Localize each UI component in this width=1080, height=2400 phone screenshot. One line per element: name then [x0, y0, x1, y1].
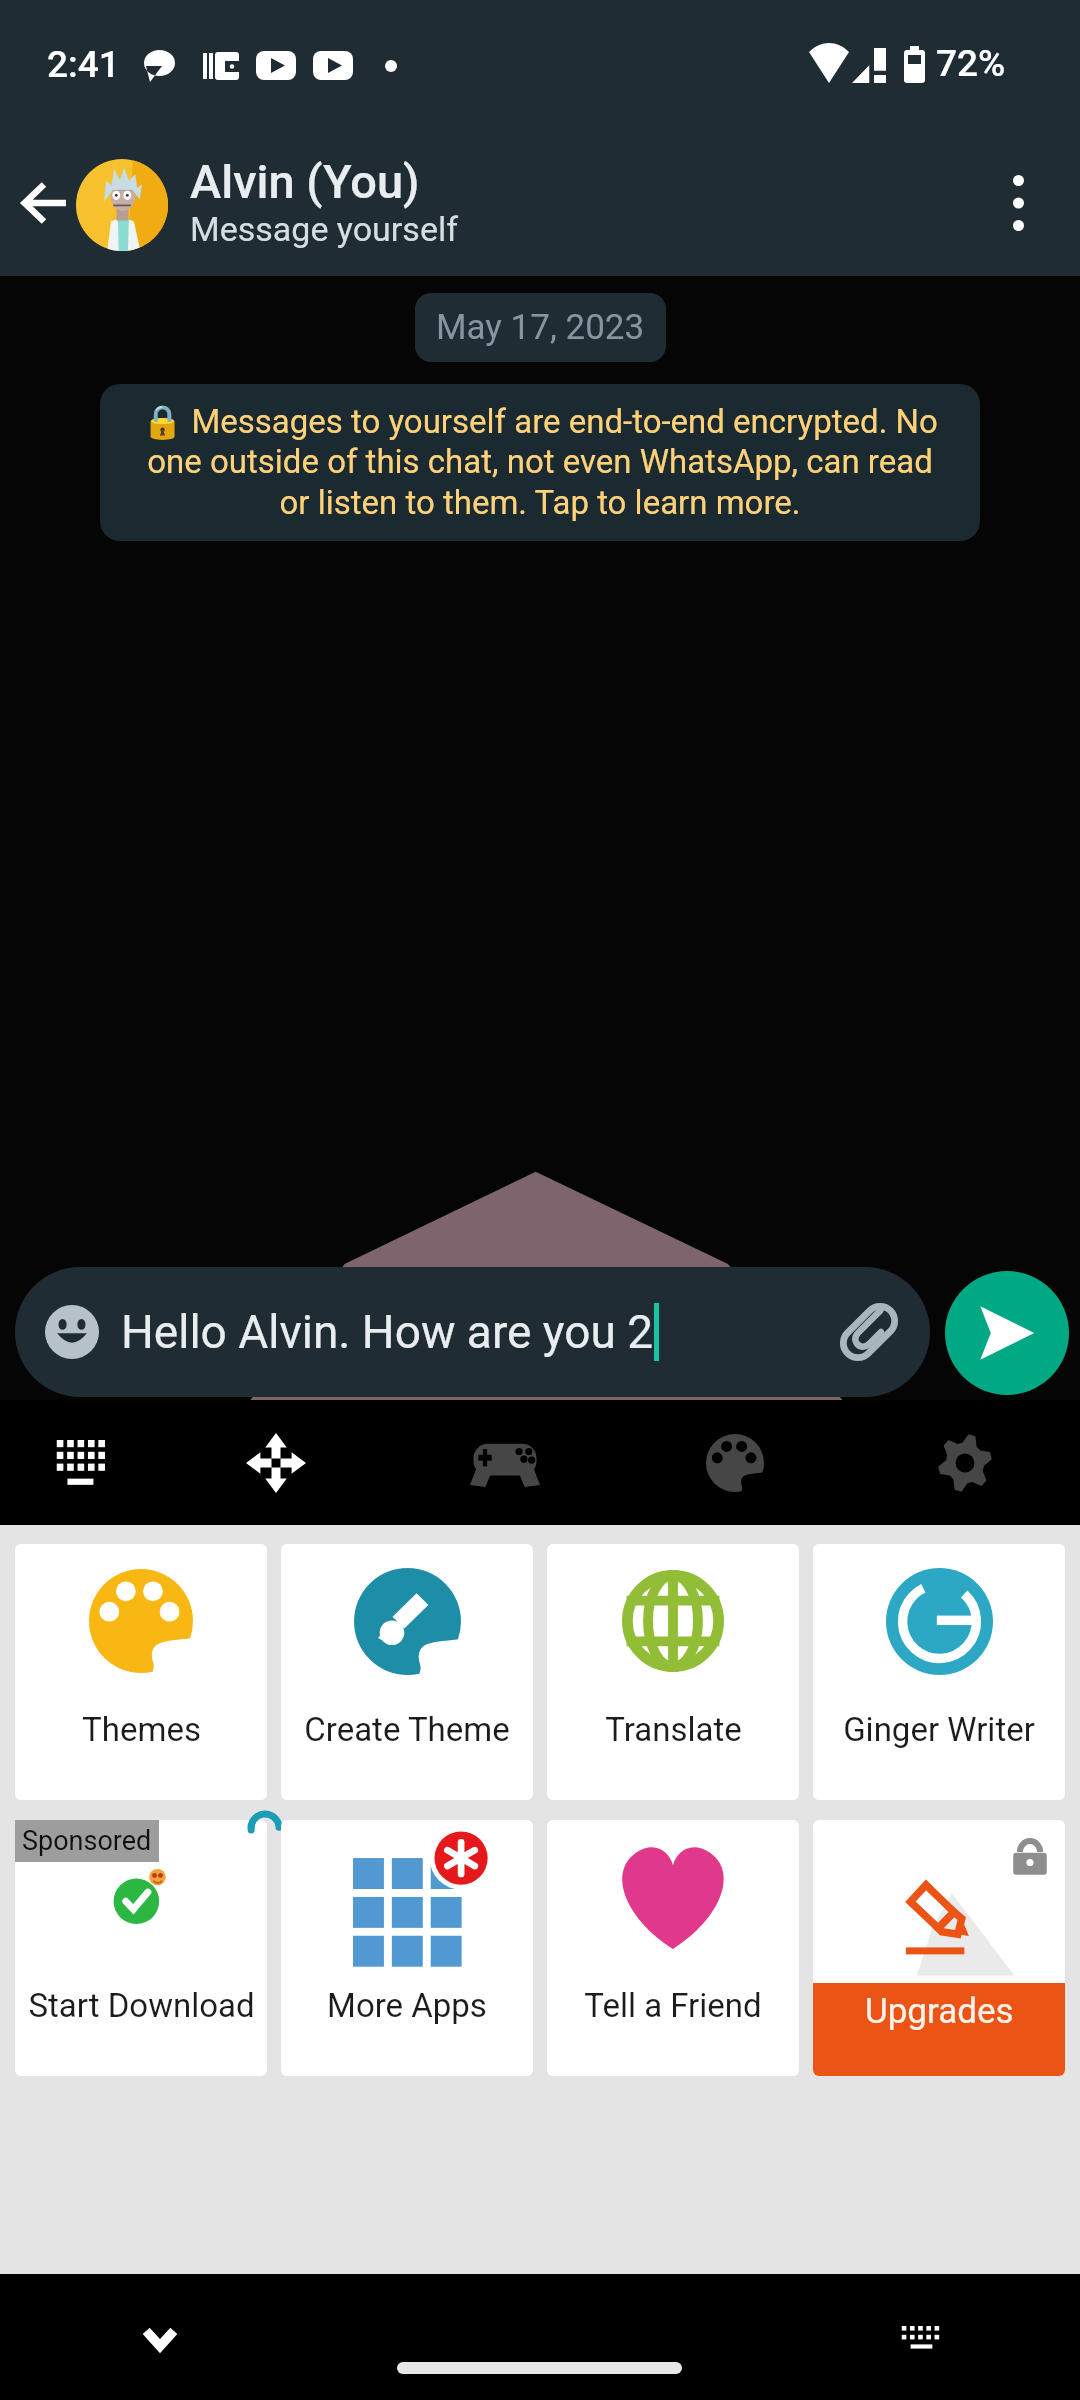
- staticText: Sponsored: [22, 1825, 152, 1857]
- button[interactable]: Start Download: [15, 1820, 267, 2076]
- button[interactable]: Hide keyboard: [110, 2288, 210, 2388]
- button[interactable]: Switch keyboard: [871, 2287, 971, 2387]
- button[interactable]: Themes: [680, 1404, 790, 1521]
- staticText: More Apps: [327, 1986, 487, 2025]
- staticText: 72%: [936, 42, 1006, 85]
- button[interactable]: Send: [945, 1271, 1069, 1395]
- staticText: Create Theme: [304, 1710, 510, 1749]
- button[interactable]: More Apps: [281, 1820, 533, 2076]
- button[interactable]: Back: [0, 155, 94, 251]
- staticText: 🔒 Messages to yourself are end-to-end en…: [130, 402, 950, 523]
- button[interactable]: Games: [450, 1404, 560, 1521]
- button[interactable]: Create Theme: [281, 1544, 533, 1800]
- staticText: Translate: [605, 1710, 742, 1749]
- button[interactable]: Themes: [15, 1544, 267, 1800]
- button[interactable]: Settings: [910, 1404, 1020, 1521]
- button[interactable]: Translate: [547, 1544, 799, 1800]
- staticText: 2:41: [47, 43, 120, 86]
- button[interactable]: More options: [968, 153, 1068, 253]
- button[interactable]: Hello Alvin. How are you 2: [15, 1267, 930, 1397]
- staticText: Themes: [82, 1710, 201, 1749]
- staticText: Start Download: [28, 1986, 255, 2025]
- button[interactable]: May 17, 2023: [415, 293, 666, 362]
- button[interactable]: Attach: [832, 1295, 906, 1369]
- button[interactable]: Keyboard: [27, 1404, 137, 1521]
- button[interactable]: Tell a Friend: [547, 1820, 799, 2076]
- staticText: Upgrades: [865, 1991, 1014, 2032]
- staticText: Ginger Writer: [843, 1710, 1035, 1749]
- button[interactable]: Upgrades: [813, 1820, 1065, 2076]
- staticText: May 17, 2023: [436, 307, 645, 348]
- staticText: Alvin (You): [190, 154, 420, 209]
- button[interactable]: Ginger Writer: [813, 1544, 1065, 1800]
- staticText: Message yourself: [190, 209, 459, 249]
- button[interactable]: Resize: [221, 1404, 331, 1521]
- staticText: Tell a Friend: [584, 1986, 762, 2025]
- button[interactable]: 🔒 Messages to yourself are end-to-end en…: [100, 384, 980, 541]
- staticText: Hello Alvin. How are you 2: [121, 1305, 654, 1359]
